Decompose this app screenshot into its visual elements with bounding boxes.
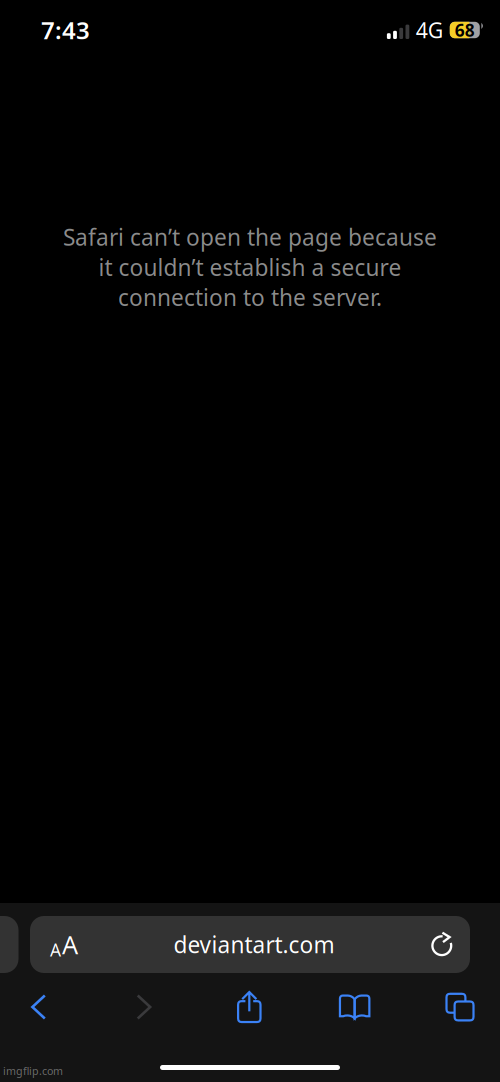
button[interactable]: A [30,916,470,973]
staticText: 68 [455,18,475,41]
staticText: Safari can’t open the page because [63,222,437,252]
button[interactable]: Back [13,986,65,1028]
button[interactable]: Bookmarks [329,986,381,1028]
staticText: imgflip.com [3,1064,63,1078]
staticText: 4G [416,16,444,44]
staticText: 7:43 [41,14,90,46]
staticText: connection to the server. [118,282,382,312]
staticText: A [62,928,78,961]
button[interactable]: Tabs [434,986,486,1028]
staticText: it couldn’t establish a secure [98,252,401,282]
staticText: A [50,938,61,961]
staticText: deviantart.com [173,929,334,959]
button[interactable]: Forward [118,986,170,1028]
button[interactable]: Share [223,986,275,1028]
